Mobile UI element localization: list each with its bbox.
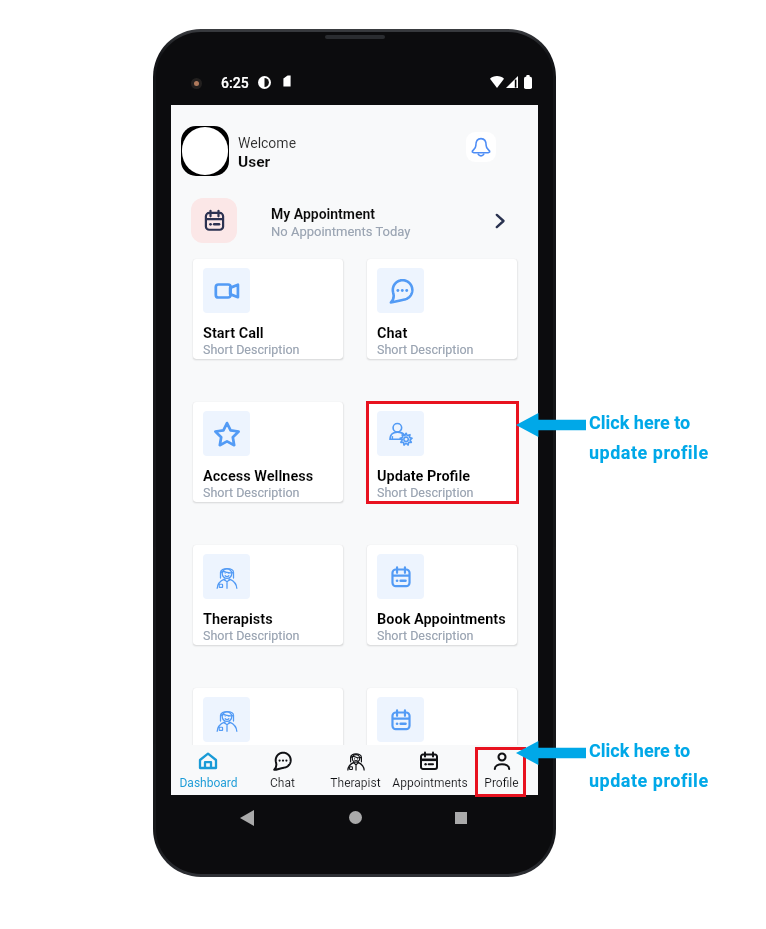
button[interactable]: Dashboard	[171, 745, 245, 795]
button[interactable]: Profile photo	[181, 126, 229, 176]
button[interactable]: Appointments	[392, 745, 465, 795]
button[interactable]: My Appointment	[185, 193, 524, 249]
staticText: Short Description	[203, 485, 300, 500]
staticText: Short Description	[203, 771, 300, 786]
staticText: No Appointments Today	[271, 224, 411, 239]
staticText: Click here to	[589, 412, 691, 433]
staticText: update profile	[589, 442, 709, 463]
staticText: Short Description	[203, 628, 300, 643]
button[interactable]: Profile	[465, 745, 538, 795]
other: Pointer arrow	[516, 413, 586, 437]
staticText: Book Appointments	[377, 611, 506, 628]
button[interactable]: Update Profile	[367, 402, 517, 502]
staticText: Short Description	[203, 342, 300, 357]
staticText: Start Call	[203, 325, 264, 342]
staticText: Click here to	[589, 740, 691, 761]
staticText: Book Appointments	[377, 754, 506, 771]
staticText: Update Profile	[377, 468, 471, 485]
staticText: Short Description	[377, 485, 474, 500]
staticText: 6:25	[221, 75, 249, 91]
staticText: Profile	[484, 776, 519, 790]
staticText: Short Description	[377, 628, 474, 643]
staticText: Therapists	[203, 611, 273, 628]
staticText: Therapists	[203, 754, 273, 771]
staticText: Short Description	[377, 342, 474, 357]
other: Pointer arrow	[516, 741, 586, 765]
staticText: Access Wellness	[203, 468, 314, 485]
button[interactable]: Notifications	[466, 132, 496, 162]
staticText: Therapist	[330, 776, 381, 790]
staticText: Appointments	[392, 776, 465, 790]
button[interactable]: Book Appointments	[367, 688, 517, 788]
staticText: Chat	[377, 325, 408, 342]
staticText: User	[238, 153, 271, 171]
button[interactable]: Chat	[367, 259, 517, 359]
button[interactable]: Therapists	[193, 688, 343, 788]
staticText: Dashboard	[179, 776, 238, 790]
button[interactable]: Start Call	[193, 259, 343, 359]
button[interactable]: Therapists	[193, 545, 343, 645]
button[interactable]: Chat	[245, 745, 319, 795]
button[interactable]: Book Appointments	[367, 545, 517, 645]
staticText: Short Description	[377, 771, 474, 786]
button[interactable]: Therapist	[319, 745, 392, 795]
button[interactable]: Access Wellness	[193, 402, 343, 502]
staticText: My Appointment	[271, 206, 376, 222]
staticText: Chat	[270, 776, 295, 790]
staticText: Welcome	[238, 135, 297, 151]
staticText: update profile	[589, 770, 709, 791]
